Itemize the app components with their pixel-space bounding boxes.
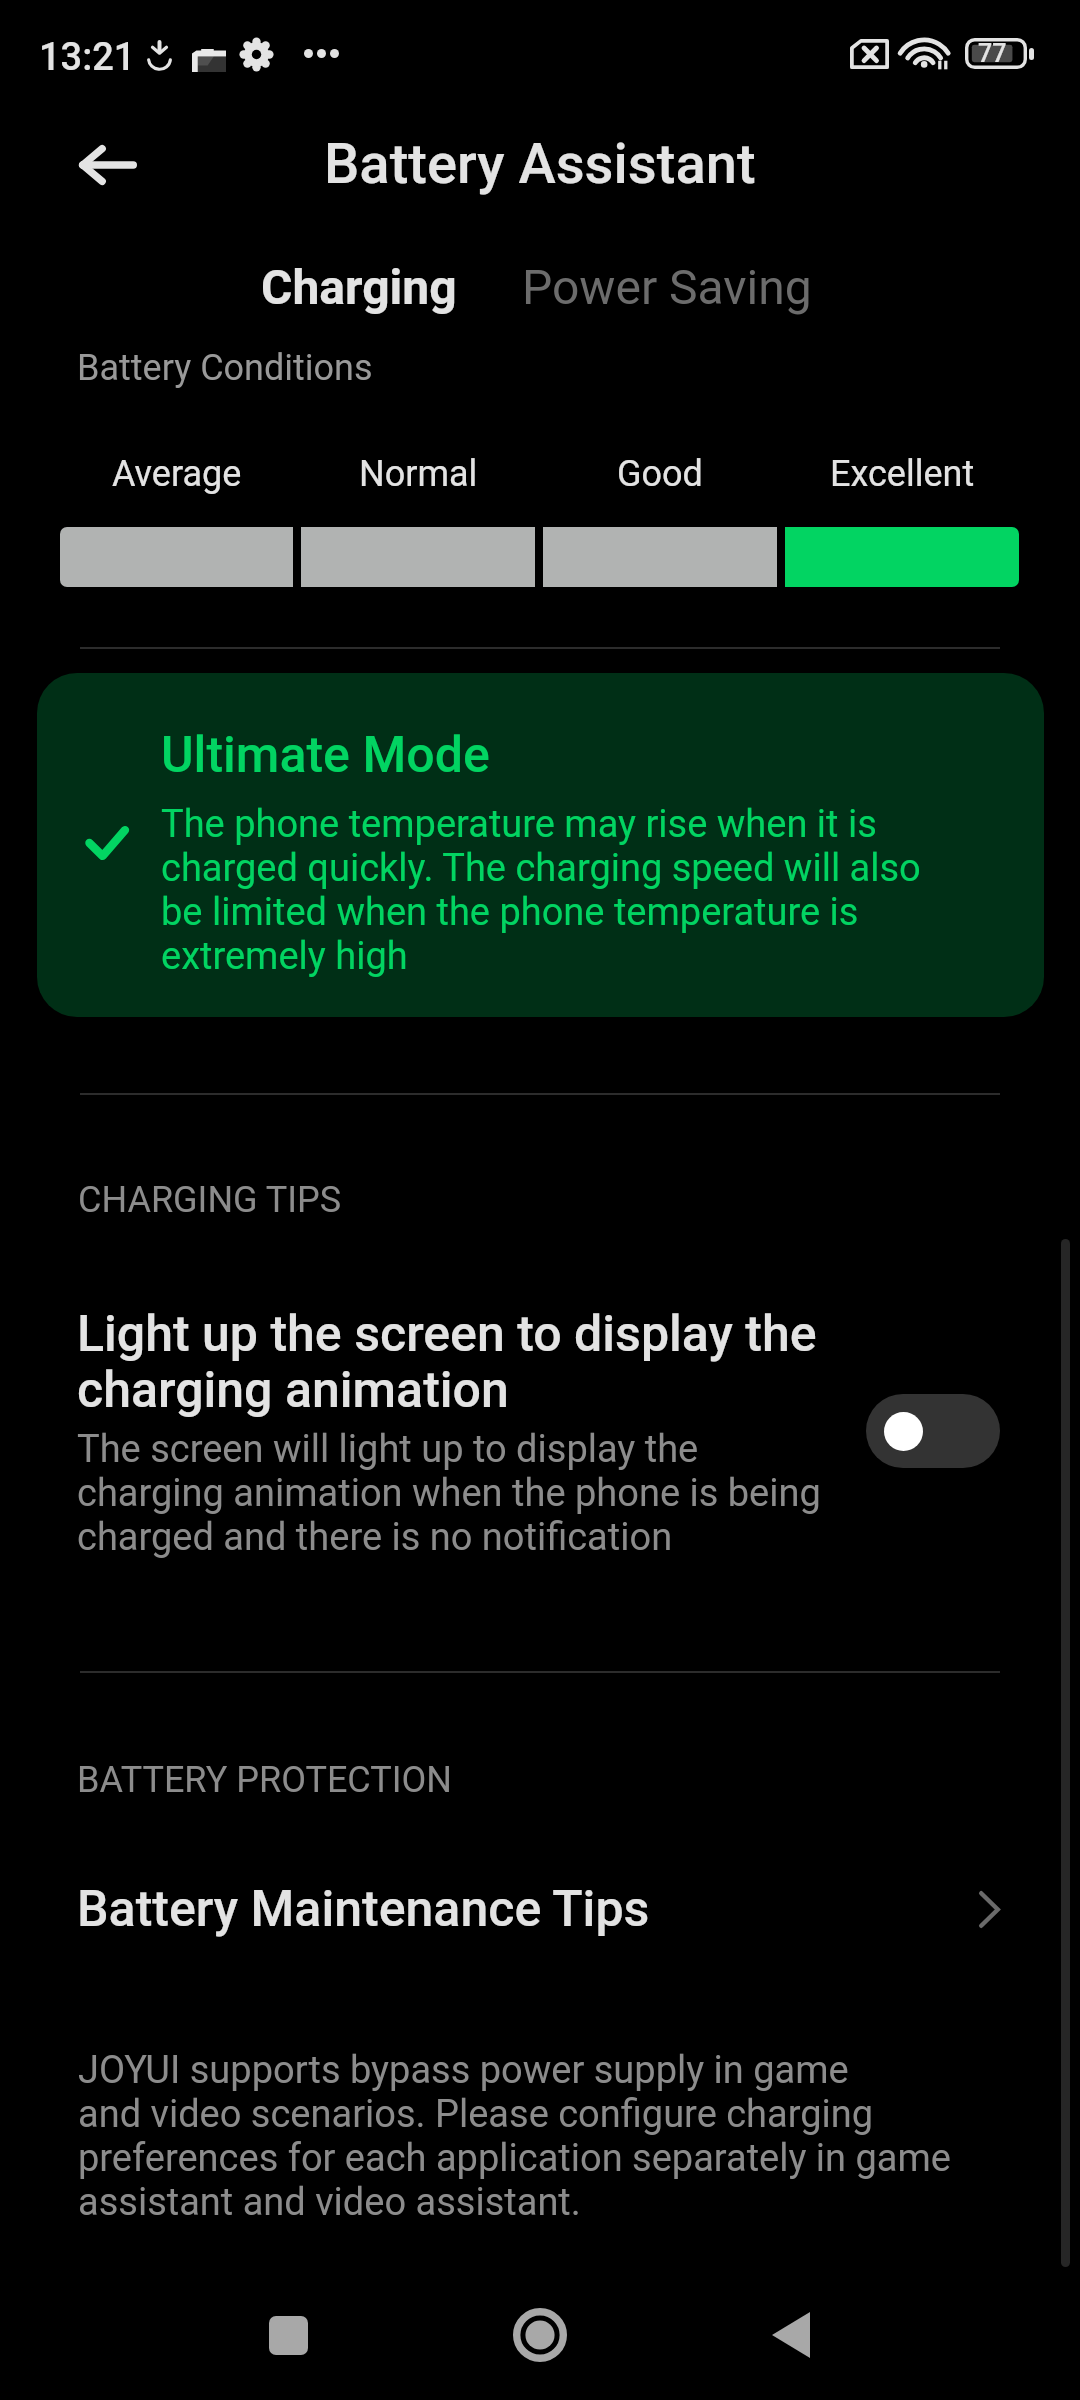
staticText: CHARGING TIPS [78, 1179, 342, 1221]
staticText: JOYUI supports bypass power supply in ga… [78, 2048, 1038, 2224]
staticText: 77 [978, 39, 1007, 68]
staticText: Excellent [830, 453, 975, 495]
button[interactable]: Recent apps [233, 2280, 343, 2390]
button[interactable]: Home [485, 2280, 595, 2390]
button[interactable]: Back [736, 2280, 846, 2390]
button[interactable] [0, 1275, 1080, 1595]
button[interactable]: Battery Maintenance Tips [0, 1880, 1080, 1939]
staticText: Normal [359, 453, 478, 495]
button[interactable]: Ultimate Mode [37, 673, 1044, 1017]
staticText: BATTERY PROTECTION [77, 1759, 453, 1801]
staticText: Light up the screen to display the charg… [77, 1305, 852, 1420]
staticText: Battery Conditions [77, 347, 373, 389]
staticText: Average [112, 453, 242, 495]
staticText: Battery Assistant [324, 131, 756, 197]
button[interactable]: Back [65, 122, 151, 208]
staticText: Ultimate Mode [161, 726, 490, 785]
staticText: Power Saving [522, 259, 812, 315]
staticText: The phone temperature may rise when it i… [161, 802, 961, 978]
button[interactable]: Toggle charging animation [866, 1394, 1000, 1468]
staticText: Charging [261, 259, 457, 315]
button[interactable]: Charging [247, 247, 471, 327]
staticText: 13:21 [39, 35, 136, 80]
staticText: The screen will light up to display the … [77, 1427, 852, 1559]
staticText: Battery Maintenance Tips [77, 1880, 979, 1939]
button[interactable]: Power Saving [508, 247, 826, 327]
staticText: Good [617, 453, 703, 495]
